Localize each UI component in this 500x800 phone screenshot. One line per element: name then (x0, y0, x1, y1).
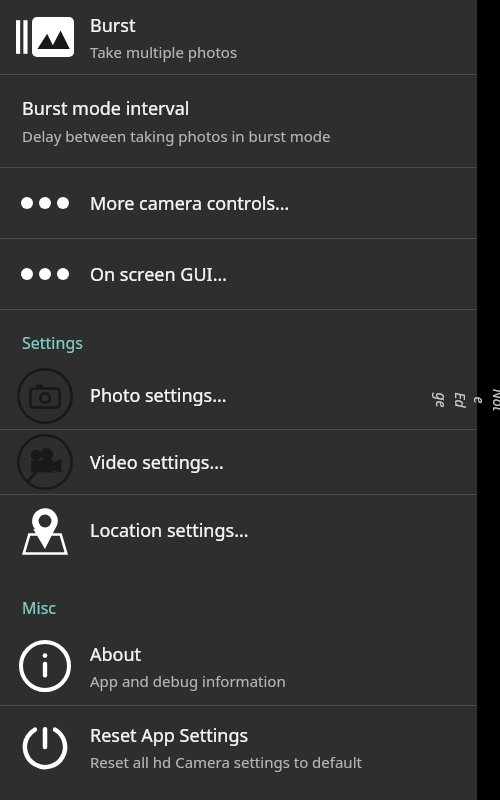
staticText: App and debug information (90, 671, 286, 691)
staticText: Delay between taking photos in burst mod… (22, 126, 331, 146)
button[interactable]: About (0, 627, 477, 705)
staticText: More camera controls… (90, 191, 290, 216)
button[interactable]: Burst mode interval (0, 75, 477, 167)
staticText: Galaxy Note Edge (431, 388, 500, 411)
other: Photo settings (0, 362, 90, 429)
button[interactable]: Video settings (0, 430, 477, 494)
button[interactable]: More camera controls (0, 168, 477, 238)
button[interactable]: Reset App Settings (0, 706, 477, 788)
other: Location settings (0, 495, 90, 565)
other: Reset App Settings (0, 706, 90, 788)
staticText: Take multiple photos (90, 42, 238, 62)
staticText: About (90, 642, 142, 667)
button[interactable]: On screen GUI (0, 239, 477, 309)
staticText: On screen GUI… (90, 262, 227, 287)
other: Burst (0, 0, 90, 74)
staticText: Burst mode interval (22, 96, 190, 121)
other: More camera controls (0, 168, 90, 238)
staticText: Misc (22, 597, 56, 619)
staticText: Reset App Settings (90, 723, 249, 748)
button[interactable]: Photo settings (0, 362, 477, 429)
other: Video settings (0, 430, 90, 494)
staticText: Reset all hd Camera settings to default (90, 752, 362, 772)
staticText: Photo settings… (90, 383, 227, 408)
button[interactable]: Burst (0, 0, 477, 74)
other: On screen GUI (0, 239, 90, 309)
button[interactable]: Location settings (0, 495, 477, 565)
staticText: Video settings… (90, 450, 224, 475)
staticText: Settings (22, 332, 83, 354)
staticText: Location settings… (90, 518, 249, 543)
staticText: Burst (90, 13, 136, 38)
other: About (0, 627, 90, 705)
